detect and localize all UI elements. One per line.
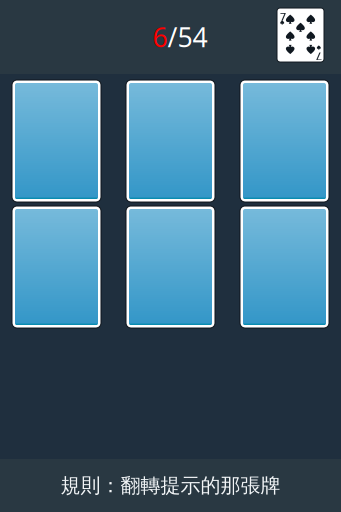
staticText: 6 — [152, 19, 167, 55]
button[interactable]: Card 1 — [12, 80, 101, 202]
button[interactable]: Card 2 — [126, 80, 215, 202]
button[interactable]: Current card, seven of spades — [277, 8, 324, 62]
button[interactable]: Card 4 — [12, 206, 101, 328]
button[interactable]: Card 6 — [240, 206, 329, 328]
button[interactable]: Card 5 — [126, 206, 215, 328]
staticText: 7 — [316, 49, 322, 64]
staticText: 規則：翻轉提示的那張牌 — [60, 473, 280, 498]
staticText: 7 — [280, 9, 286, 24]
button[interactable]: Card 3 — [240, 80, 329, 202]
staticText: /54 — [167, 19, 207, 55]
